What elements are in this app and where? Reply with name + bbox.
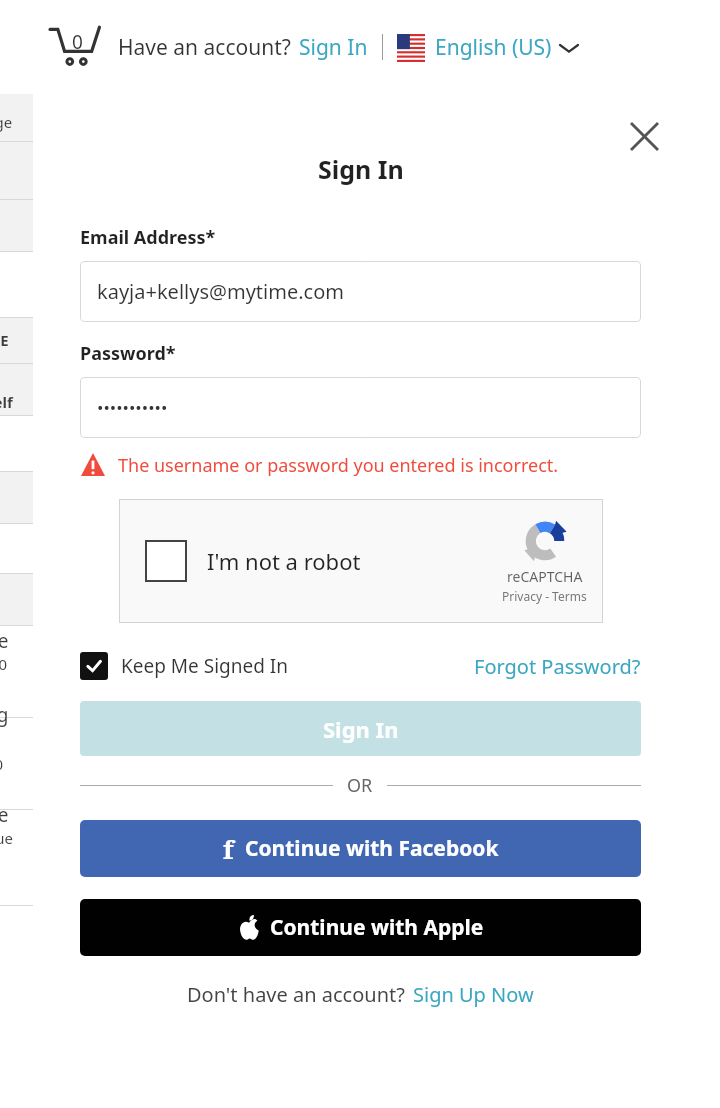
staticText: Sign In: [323, 714, 399, 744]
staticText: English (US): [435, 33, 552, 62]
staticText: Sign Up Now: [413, 981, 534, 1008]
button[interactable]: •••••••••••: [80, 377, 641, 438]
staticText: Have an account?: [118, 33, 291, 62]
button[interactable]: I'm not a robot: [119, 499, 603, 623]
staticText: MEN: [0, 330, 19, 370]
staticText: Sign In: [318, 152, 404, 186]
button[interactable]: English (US): [397, 33, 578, 62]
button[interactable]: Cart, 0 items: [48, 23, 102, 71]
button[interactable]: Sign In: [80, 701, 641, 756]
staticText: Privacy - Terms: [502, 588, 587, 604]
staticText: 0: [72, 29, 83, 55]
staticText: reCAPTCHA: [507, 567, 583, 586]
staticText: .00: [0, 654, 8, 674]
staticText: OR: [347, 773, 373, 798]
button[interactable]: Keep Me Signed In: [80, 652, 288, 680]
button[interactable]: Close: [622, 114, 666, 158]
staticText: Continue with Facebook: [245, 834, 499, 863]
staticText: kayja+kellys@mytime.com: [97, 278, 344, 305]
staticText: Keep Me Signed In: [121, 653, 288, 679]
staticText: self: [0, 392, 13, 412]
staticText: ge: [0, 802, 9, 828]
staticText: Forgot Password?: [474, 653, 641, 680]
button[interactable]: Continue with Apple: [80, 899, 641, 956]
staticText: f: [223, 831, 234, 866]
staticText: Sign In: [299, 33, 368, 62]
staticText: age: [0, 702, 19, 754]
button[interactable]: Sign In: [299, 33, 368, 62]
button[interactable]: Sign Up Now: [413, 981, 534, 1008]
staticText: 00: [0, 754, 4, 774]
button[interactable]: f: [80, 820, 641, 877]
staticText: Continue with Apple: [270, 913, 484, 942]
button[interactable]: kayja+kellys@mytime.com: [80, 261, 641, 322]
staticText: age: [0, 112, 13, 132]
button[interactable]: Forgot Password?: [474, 653, 641, 680]
staticText: ge: [0, 628, 9, 654]
staticText: •••••••••••: [97, 396, 168, 419]
staticText: I'm not a robot: [207, 546, 361, 576]
staticText: The username or password you entered is …: [118, 453, 559, 478]
staticText: Email Address*: [80, 225, 216, 250]
staticText: Don't have an account?: [187, 981, 405, 1008]
staticText: gues: [0, 828, 19, 868]
staticText: Password*: [80, 341, 176, 366]
